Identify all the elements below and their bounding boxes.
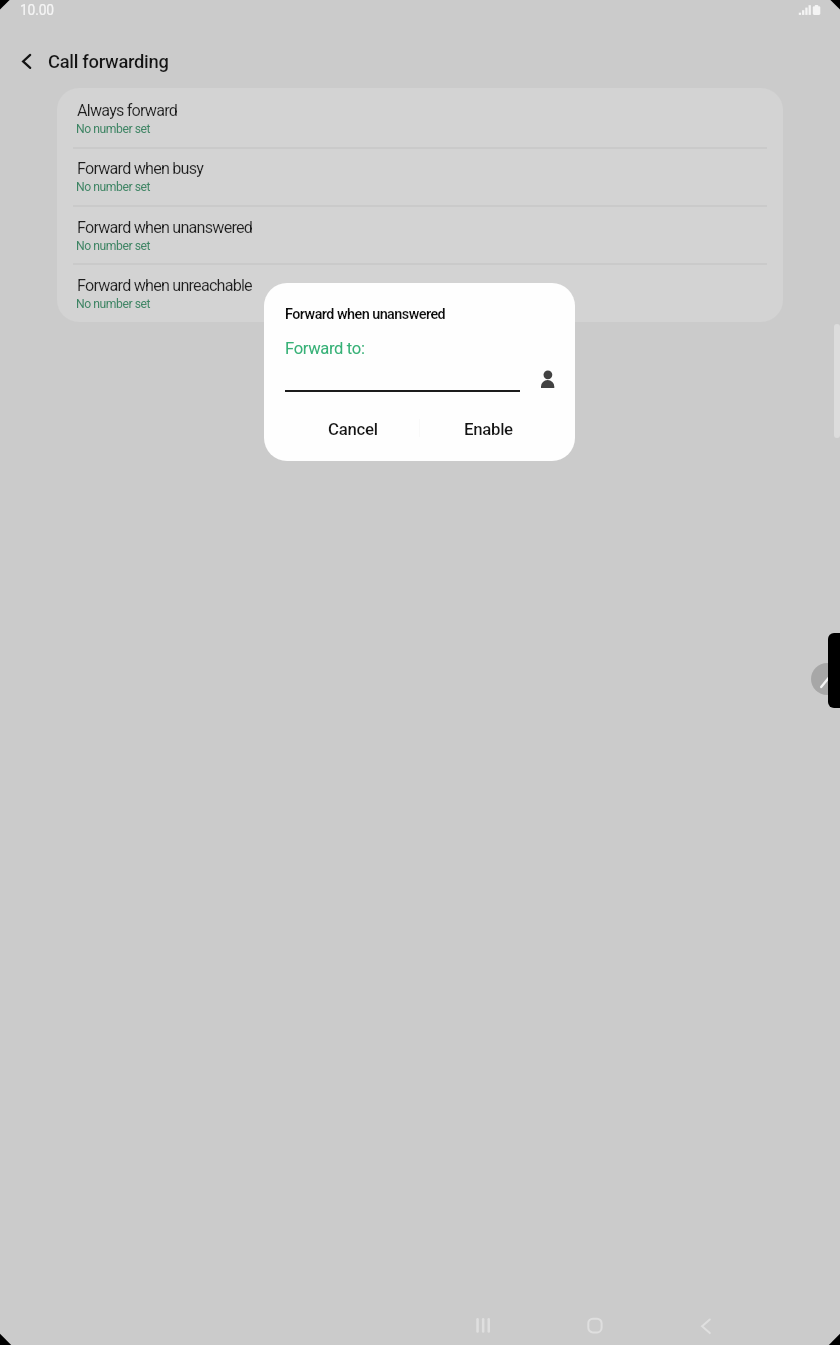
button[interactable]: Forward when unanswered (57, 205, 783, 263)
staticText: No number set (76, 239, 151, 253)
staticText: Forward when unreachable (77, 276, 252, 295)
staticText: Enable (464, 419, 513, 439)
button[interactable]: Always forward (57, 88, 783, 146)
staticText: Forward when unanswered (77, 218, 253, 237)
staticText: 10.00 (20, 2, 54, 18)
staticText: Call forwarding (48, 51, 169, 73)
staticText: No number set (76, 180, 151, 194)
staticText: Forward when busy (77, 159, 204, 178)
staticText: Forward to: (285, 339, 365, 358)
button[interactable]: Edge panel (811, 663, 840, 695)
button[interactable]: Home (570, 1301, 618, 1345)
staticText: No number set (76, 122, 151, 136)
button[interactable]: Forward when unreachable (57, 263, 783, 321)
button[interactable]: Cancel (283, 410, 423, 448)
button[interactable]: Navigate up (5, 39, 49, 83)
button[interactable]: Enable (418, 410, 558, 448)
staticText: No number set (76, 297, 151, 311)
button[interactable]: Recents (459, 1301, 507, 1345)
staticText: Forward when unanswered (285, 306, 446, 323)
button[interactable]: Choose contact (531, 359, 565, 393)
button[interactable]: Forward when busy (57, 146, 783, 204)
staticText: Cancel (328, 419, 378, 439)
staticText: Always forward (77, 101, 178, 120)
